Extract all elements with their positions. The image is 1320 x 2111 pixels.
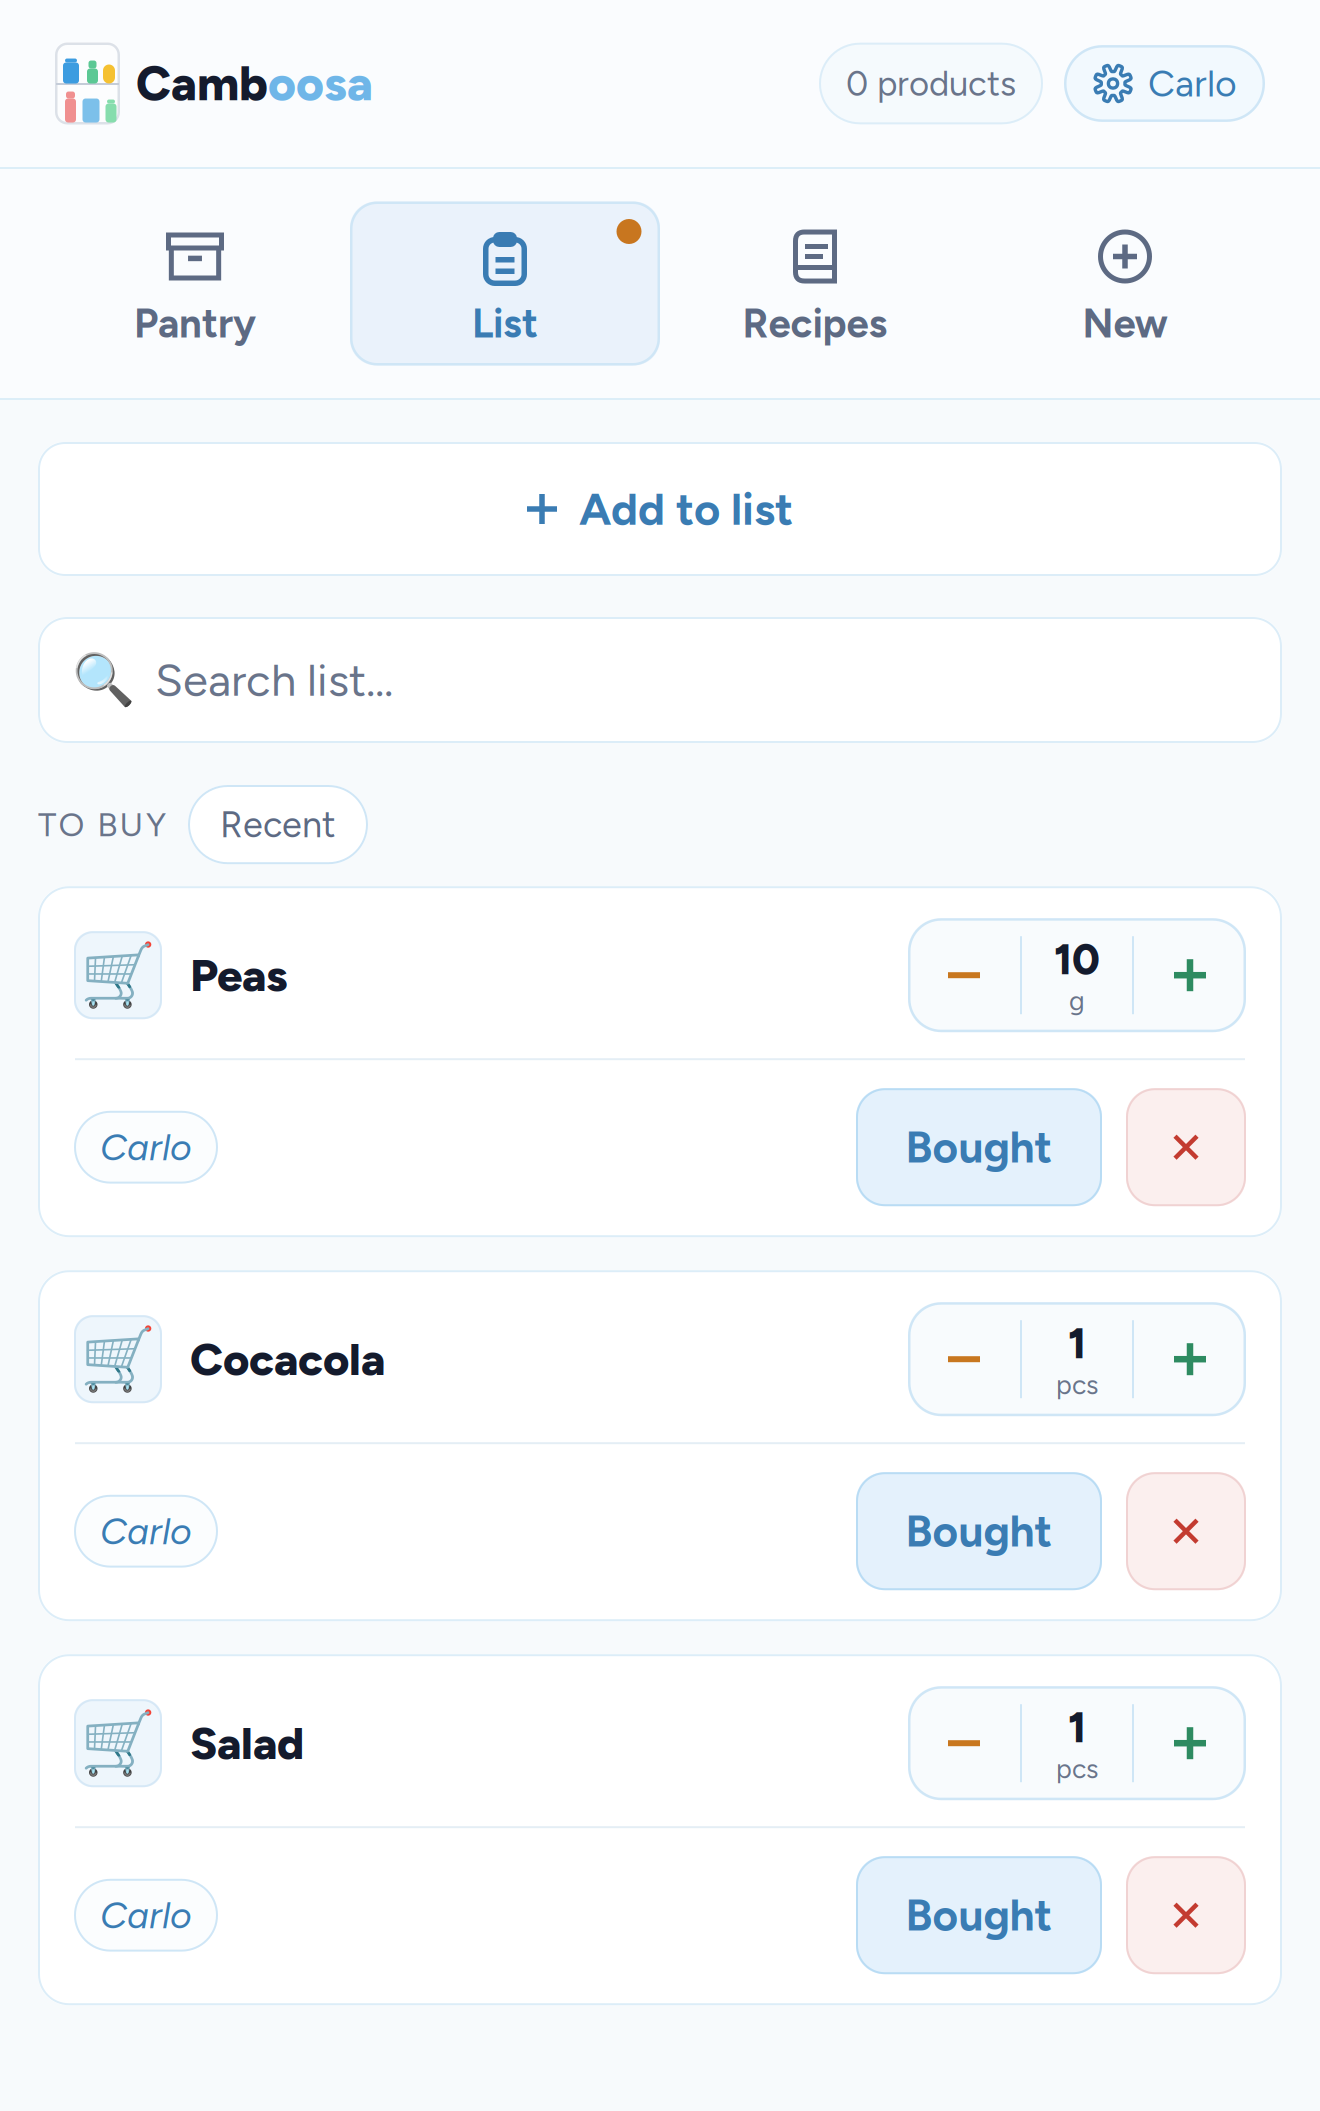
staticText: 🛒 xyxy=(80,1323,156,1395)
staticText: U xyxy=(120,805,144,845)
staticText: Camb xyxy=(136,55,268,112)
staticText: Y xyxy=(146,805,166,845)
button[interactable]: Add to list xyxy=(38,442,1282,576)
staticText: pcs xyxy=(1056,1753,1098,1785)
staticText: g xyxy=(1069,985,1085,1017)
staticText: Bought xyxy=(905,1889,1052,1942)
button[interactable]: Remove Cocacola xyxy=(1126,1472,1246,1590)
staticText: Salad xyxy=(190,1716,304,1770)
button[interactable]: Decrease xyxy=(908,918,1020,1032)
staticText: 1 xyxy=(1068,1702,1086,1753)
button[interactable]: Remove Salad xyxy=(1126,1856,1246,1974)
staticText: 10 xyxy=(1054,934,1100,985)
staticText: Recipes xyxy=(742,299,887,347)
staticText: Carlo xyxy=(100,1893,192,1938)
staticText: B xyxy=(97,805,117,845)
button[interactable]: New xyxy=(970,201,1280,365)
staticText: Cocacola xyxy=(190,1332,385,1386)
button[interactable]: 🔍 xyxy=(38,617,1282,743)
button[interactable]: Increase xyxy=(1134,1302,1246,1416)
button[interactable]: Decrease xyxy=(908,1686,1020,1800)
staticText: Carlo xyxy=(1148,61,1237,106)
staticText: Recent xyxy=(220,803,336,846)
staticText: 🛒 xyxy=(80,939,156,1011)
button[interactable]: Carlo xyxy=(1064,45,1265,122)
button[interactable]: List xyxy=(350,201,660,365)
button[interactable]: Recent xyxy=(188,785,368,864)
staticText: New xyxy=(1082,299,1167,347)
staticText: 1 xyxy=(1068,1318,1086,1369)
staticText: oosa xyxy=(268,55,373,112)
staticText: 🛒 xyxy=(80,1707,156,1779)
staticText: Bought xyxy=(905,1121,1052,1174)
staticText: Pantry xyxy=(134,299,256,347)
button[interactable]: Increase xyxy=(1134,1686,1246,1800)
staticText: T xyxy=(38,805,56,845)
staticText: Bought xyxy=(905,1505,1052,1558)
staticText: Carlo xyxy=(100,1509,192,1554)
staticText: Peas xyxy=(190,948,288,1002)
button[interactable]: Bought xyxy=(856,1088,1102,1206)
button[interactable]: Pantry xyxy=(40,201,350,365)
button[interactable]: Bought xyxy=(856,1472,1102,1590)
staticText: 🔍 xyxy=(72,650,135,710)
button[interactable]: Recipes xyxy=(660,201,970,365)
staticText: List xyxy=(472,299,538,347)
button[interactable]: Increase xyxy=(1134,918,1246,1032)
staticText: Add to list xyxy=(579,482,793,536)
staticText: Carlo xyxy=(100,1125,192,1170)
button[interactable]: Bought xyxy=(856,1856,1102,1974)
staticText: pcs xyxy=(1056,1369,1098,1401)
staticText: Search list... xyxy=(155,653,393,707)
staticText: O xyxy=(58,805,84,845)
button[interactable]: Remove Peas xyxy=(1126,1088,1246,1206)
button[interactable]: Decrease xyxy=(908,1302,1020,1416)
staticText: 0 products xyxy=(846,63,1016,104)
